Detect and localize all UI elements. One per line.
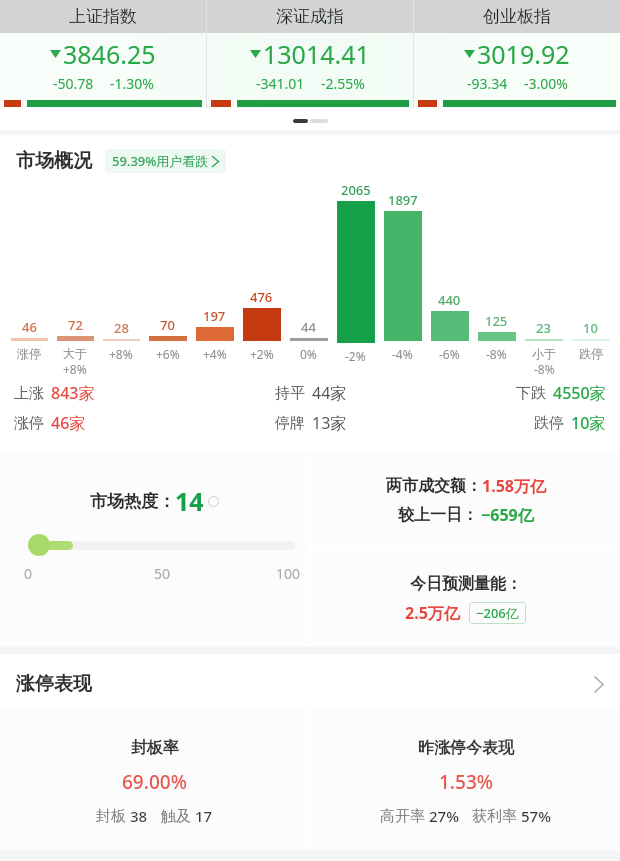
staticText: 小于 — [532, 346, 556, 361]
staticText: 持平 — [275, 384, 305, 403]
staticText: 13家 — [312, 412, 347, 434]
other: 更多 — [594, 676, 604, 693]
staticText: 14 — [175, 484, 204, 518]
staticText: 3019.92 — [477, 37, 570, 71]
staticText: 44 — [301, 318, 316, 336]
staticText: 获利率 — [472, 807, 517, 826]
staticText: 上证指数 — [69, 6, 137, 27]
staticText: 跌停 — [579, 346, 603, 361]
button[interactable]: 59.39%用户看跌 — [105, 149, 226, 173]
staticText: +6% — [156, 346, 180, 362]
button[interactable] — [28, 534, 50, 556]
staticText: -1.30% — [110, 74, 154, 93]
staticText: -6% — [439, 346, 460, 362]
staticText: -341.01 — [256, 74, 305, 93]
staticText: 高开率 — [380, 807, 425, 826]
staticText: -8% — [534, 361, 555, 376]
staticText: 涨停 — [17, 346, 41, 361]
button[interactable]: 深证成指 — [207, 0, 413, 107]
staticText: 2.5万亿 — [405, 602, 460, 624]
staticText: 440 — [438, 291, 461, 309]
staticText: 27% — [429, 806, 459, 826]
staticText: 封板 — [96, 807, 126, 826]
staticText: 44家 — [312, 382, 347, 404]
staticText: -3.00% — [524, 74, 568, 93]
button[interactable]: 涨停表现 — [0, 654, 620, 710]
staticText: 3846.25 — [63, 37, 156, 71]
staticText: 市场热度： — [90, 491, 175, 512]
staticText: +8% — [63, 361, 87, 376]
button[interactable]: 封板率 — [0, 710, 309, 850]
staticText: 触及 — [161, 807, 191, 826]
staticText: 1897 — [388, 191, 418, 209]
staticText: 涨停 — [14, 414, 44, 433]
staticText: 72 — [68, 316, 83, 334]
staticText: −659亿 — [481, 504, 534, 526]
staticText: 涨停表现 — [16, 672, 92, 696]
staticText: 今日预测量能： — [410, 574, 522, 594]
staticText: 69.00% — [122, 769, 187, 795]
staticText: 2065 — [341, 181, 371, 199]
staticText: 停牌 — [275, 414, 305, 433]
button[interactable]: 昨涨停今表现 — [311, 710, 620, 850]
staticText: 0 — [24, 564, 33, 583]
staticText: 17 — [195, 806, 213, 826]
staticText: +8% — [109, 346, 133, 362]
staticText: -93.34 — [467, 74, 508, 93]
staticText: 创业板指 — [483, 6, 551, 27]
button[interactable]: 创业板指 — [414, 0, 620, 107]
staticText: -50.78 — [53, 74, 94, 93]
staticText: 125 — [485, 312, 508, 330]
staticText: 70 — [160, 316, 175, 334]
staticText: −206亿 — [476, 604, 519, 622]
staticText: 13014.41 — [263, 37, 370, 71]
staticText: 封板率 — [131, 738, 179, 758]
staticText: 843家 — [51, 382, 95, 404]
staticText: 57% — [521, 806, 551, 826]
staticText: 昨涨停今表现 — [418, 738, 514, 758]
other: 说明 — [208, 496, 219, 507]
staticText: 59.39%用户看跌 — [112, 152, 209, 170]
staticText: 市场概况 — [16, 149, 92, 173]
staticText: 10 — [583, 319, 598, 337]
staticText: 100 — [276, 564, 301, 583]
staticText: -2% — [345, 348, 366, 364]
staticText: 下跌 — [516, 384, 546, 403]
staticText: +4% — [203, 346, 227, 362]
staticText: 50 — [154, 564, 171, 583]
staticText: 10家 — [571, 412, 606, 434]
staticText: -8% — [486, 346, 507, 362]
staticText: 1.53% — [439, 769, 493, 795]
staticText: 46家 — [51, 412, 86, 434]
staticText: 46 — [22, 318, 37, 336]
staticText: 两市成交额： — [386, 476, 482, 496]
staticText: 0% — [300, 346, 317, 362]
staticText: 上涨 — [14, 384, 44, 403]
button[interactable]: 上证指数 — [0, 0, 206, 107]
staticText: -4% — [392, 346, 413, 362]
staticText: -2.55% — [321, 74, 365, 93]
staticText: +2% — [250, 346, 274, 362]
staticText: 较上一日： — [398, 505, 478, 525]
staticText: 4550家 — [553, 382, 606, 404]
staticText: 大于 — [63, 346, 87, 361]
staticText: 28 — [114, 319, 129, 337]
staticText: 23 — [536, 319, 551, 337]
staticText: 476 — [250, 288, 273, 306]
staticText: 38 — [130, 806, 148, 826]
staticText: 跌停 — [534, 414, 564, 433]
staticText: 深证成指 — [276, 6, 344, 27]
staticText: 197 — [203, 307, 226, 325]
staticText: 1.58万亿 — [482, 475, 546, 497]
